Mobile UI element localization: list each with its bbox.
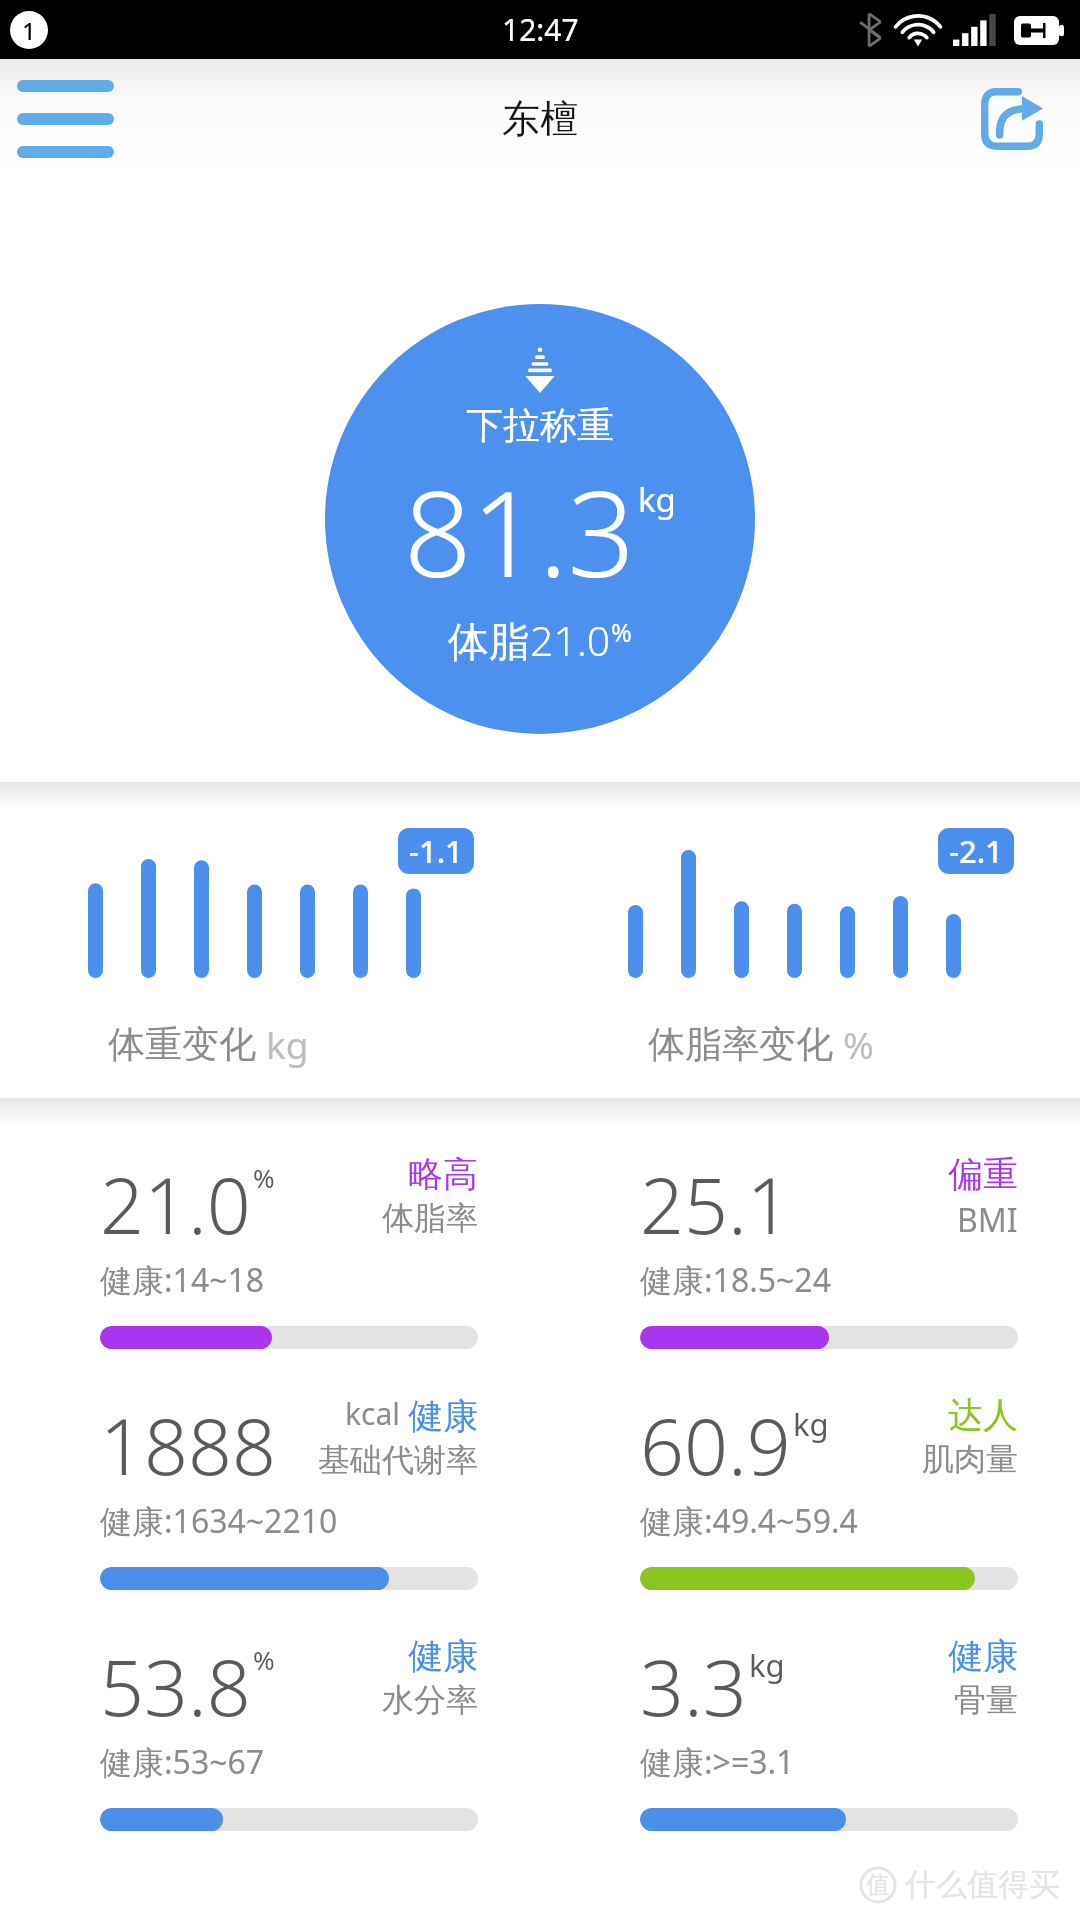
staticText: % (843, 1019, 874, 1069)
button[interactable]: Share (968, 75, 1056, 163)
button[interactable]: -2.1 (540, 810, 1080, 1098)
staticText: 健康:1634~2210 (100, 1499, 338, 1543)
staticText: 体重变化 (108, 1021, 256, 1068)
staticText: 健康 (408, 1394, 478, 1438)
button[interactable]: 53.8 (0, 1608, 540, 1849)
staticText: 偏重 (948, 1152, 1018, 1196)
staticText: kcal (345, 1393, 400, 1434)
staticText: 健康:18.5~24 (640, 1258, 831, 1302)
staticText: 21.0 (100, 1152, 251, 1257)
staticText: -2.1 (949, 830, 1003, 872)
staticText: 下拉称重 (466, 402, 614, 449)
button[interactable]: 下拉称重 (325, 304, 755, 734)
button[interactable]: -1.1 (0, 810, 540, 1098)
staticText: kg (638, 477, 676, 522)
button[interactable]: 3.3 (540, 1608, 1080, 1849)
staticText: 体脂率 (382, 1198, 478, 1238)
staticText: 略高 (408, 1152, 478, 1196)
staticText: 12:47 (502, 9, 579, 50)
staticText: 健康 (408, 1634, 478, 1678)
staticText: 东檀 (502, 95, 578, 143)
staticText: 肌肉量 (922, 1439, 1018, 1479)
staticText: 健康:49.4~59.4 (640, 1499, 858, 1543)
staticText: 3.3 (640, 1634, 747, 1739)
staticText: 体脂率变化 (648, 1021, 833, 1068)
button[interactable]: Menu (6, 67, 124, 171)
staticText: 什么值得买 (905, 1865, 1060, 1904)
staticText: -1.1 (409, 830, 463, 872)
staticText: % (253, 1642, 275, 1677)
staticText: 81.3 (404, 451, 635, 612)
staticText: 健康:53~67 (100, 1740, 265, 1784)
staticText: 达人 (948, 1393, 1018, 1437)
staticText: 1888 (100, 1393, 276, 1498)
staticText: 1 (22, 14, 36, 47)
button[interactable]: 21.0 (0, 1126, 540, 1367)
button[interactable]: 60.9 (540, 1367, 1080, 1608)
staticText: kg (793, 1403, 829, 1445)
staticText: BMI (957, 1198, 1018, 1242)
staticText: 25.1 (640, 1152, 791, 1257)
staticText: 值 (866, 1870, 890, 1900)
button[interactable]: 1888 (0, 1367, 540, 1608)
staticText: 骨量 (954, 1680, 1018, 1720)
button[interactable]: 25.1 (540, 1126, 1080, 1367)
staticText: 健康 (948, 1634, 1018, 1678)
staticText: 水分率 (382, 1680, 478, 1720)
staticText: 健康:>=3.1 (640, 1740, 795, 1784)
staticText: % (611, 615, 632, 649)
staticText: 体脂21.0 (448, 612, 611, 668)
staticText: 健康:14~18 (100, 1258, 265, 1302)
staticText: % (253, 1160, 275, 1195)
staticText: kg (266, 1019, 309, 1069)
staticText: 基础代谢率 (318, 1440, 478, 1480)
staticText: 60.9 (640, 1393, 791, 1498)
staticText: kg (749, 1644, 785, 1686)
staticText: 53.8 (100, 1634, 251, 1739)
